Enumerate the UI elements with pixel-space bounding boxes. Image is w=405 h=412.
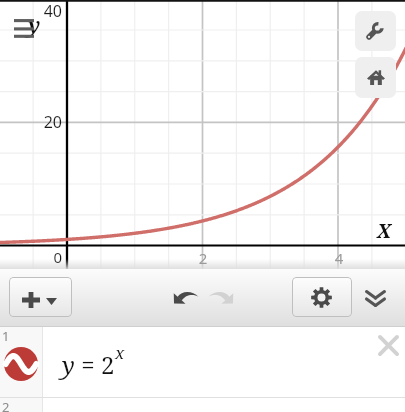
button[interactable]: Undo bbox=[167, 283, 203, 311]
staticText: 4 bbox=[319, 248, 359, 268]
staticText: X bbox=[377, 218, 391, 244]
staticText: 1 bbox=[2, 327, 10, 345]
button[interactable]: Add expression bbox=[9, 277, 72, 317]
button[interactable]: 1 bbox=[0, 327, 405, 397]
staticText: 20 bbox=[22, 111, 62, 133]
button[interactable]: Settings bbox=[292, 277, 352, 317]
button[interactable]: Menu bbox=[4, 9, 43, 48]
staticText: y bbox=[28, 11, 41, 40]
staticText: 40 bbox=[22, 0, 62, 22]
staticText: x bbox=[115, 341, 125, 364]
staticText: 2 bbox=[2, 398, 10, 412]
staticText: = 2 bbox=[75, 348, 115, 381]
staticText: y bbox=[62, 348, 75, 381]
button[interactable]: Redo bbox=[203, 283, 239, 311]
button[interactable]: Home bbox=[355, 57, 396, 98]
button[interactable]: Graph settings bbox=[355, 11, 396, 51]
button[interactable]: Collapse keypad bbox=[361, 286, 390, 310]
button[interactable]: 2 bbox=[0, 397, 405, 412]
staticText: 0 bbox=[22, 247, 62, 267]
staticText: 2 bbox=[183, 248, 223, 268]
button[interactable]: Delete expression bbox=[370, 327, 405, 363]
